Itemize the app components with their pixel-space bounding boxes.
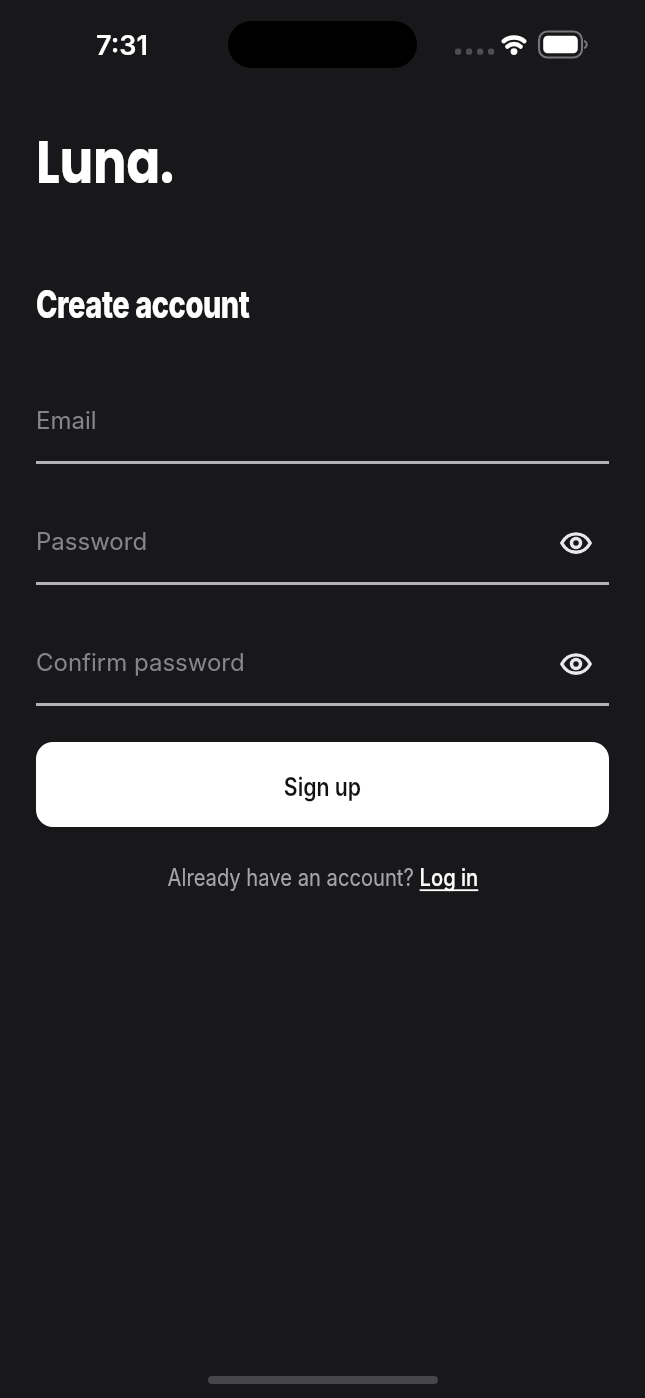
button[interactable]: [556, 525, 596, 561]
button[interactable]: Log in: [420, 863, 478, 892]
staticText: Already have an account?: [168, 863, 420, 892]
staticText: Password: [36, 527, 148, 556]
button[interactable]: Confirm password: [36, 637, 609, 707]
staticText: Email: [36, 406, 97, 435]
button[interactable]: Email: [36, 395, 609, 465]
staticText: Create account: [36, 281, 250, 327]
button[interactable]: Sign up: [36, 742, 609, 827]
button[interactable]: Password: [36, 516, 609, 586]
button[interactable]: [556, 646, 596, 682]
staticText: Luna.: [36, 120, 175, 204]
staticText: Confirm password: [36, 648, 245, 677]
staticText: 7:31: [96, 29, 148, 62]
staticText: Sign up: [284, 772, 361, 802]
